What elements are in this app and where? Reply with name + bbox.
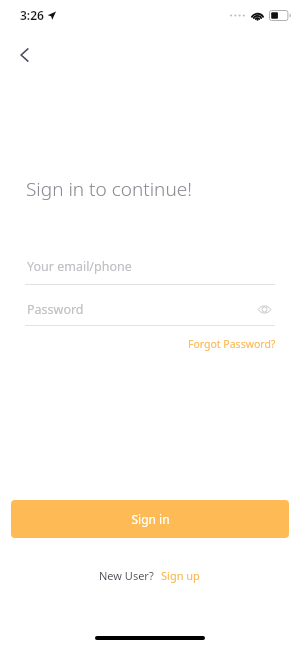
staticText: Sign up — [161, 568, 200, 583]
button[interactable]: Password — [25, 298, 275, 320]
staticText: 3:26 — [20, 7, 44, 23]
button[interactable]: Sign in — [11, 500, 289, 538]
staticText: Sign in to continue! — [26, 176, 192, 202]
button[interactable]: Your email/phone — [25, 258, 275, 285]
staticText: New User? — [99, 568, 154, 583]
button[interactable]: Back — [8, 38, 42, 72]
staticText: Password — [27, 301, 253, 318]
button[interactable]: Show password — [253, 298, 275, 320]
staticText: Your email/phone — [27, 258, 132, 275]
staticText: Forgot Password? — [188, 337, 276, 351]
button[interactable]: Sign up — [159, 566, 202, 585]
button[interactable]: Forgot Password? — [186, 335, 278, 353]
staticText: Sign in — [131, 511, 170, 527]
